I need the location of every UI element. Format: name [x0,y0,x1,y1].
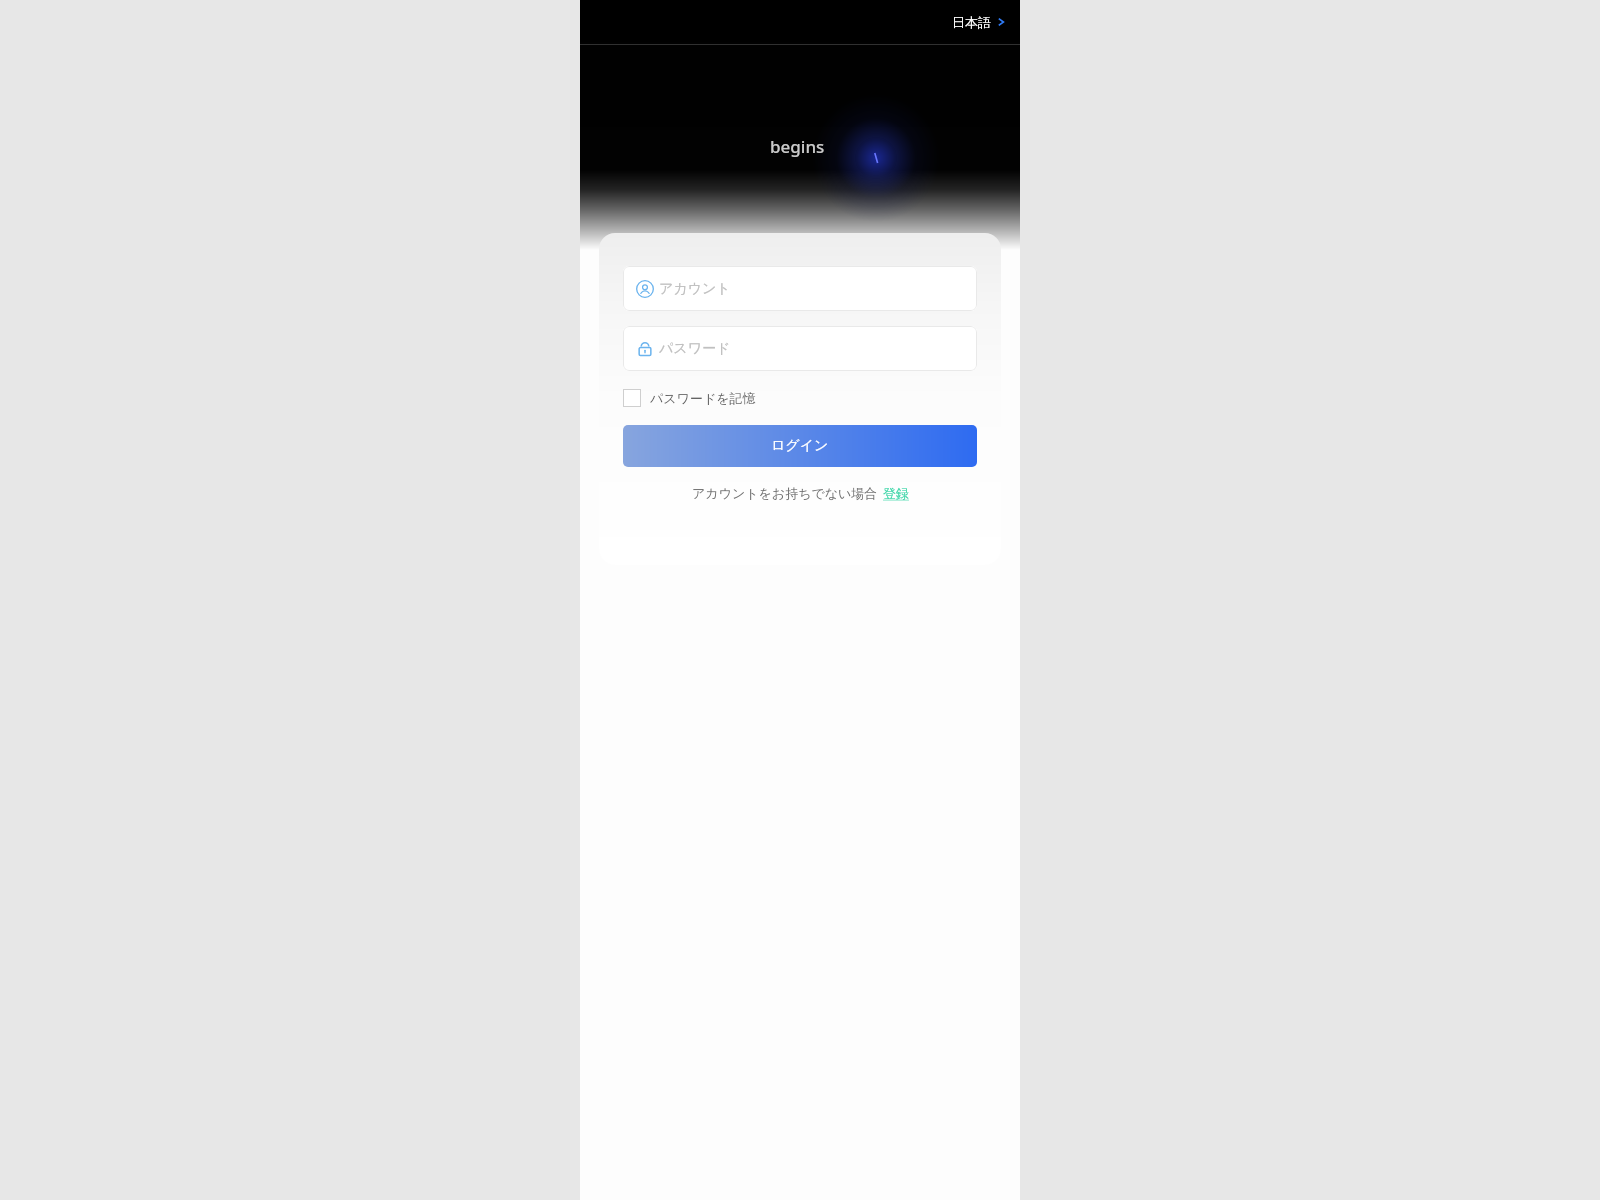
button[interactable]: パスワード [623,326,977,371]
staticText: 登録 [883,485,909,501]
button[interactable]: 日本語 [940,6,1020,38]
button[interactable]: ログイン [623,425,977,467]
button[interactable]: アカウント [623,266,977,311]
button[interactable]: パスワードを記憶 [623,387,756,409]
other: Change language [996,17,1006,27]
staticText: アカウント [659,280,731,298]
staticText: ログイン [771,437,829,455]
staticText: 日本語 [952,14,991,30]
staticText: アカウントをお持ちでない場合 [692,485,878,501]
staticText: パスワード [659,340,731,358]
button[interactable]: 登録 [883,485,909,501]
staticText: begins [770,135,825,158]
staticText: パスワードを記憶 [650,390,756,406]
